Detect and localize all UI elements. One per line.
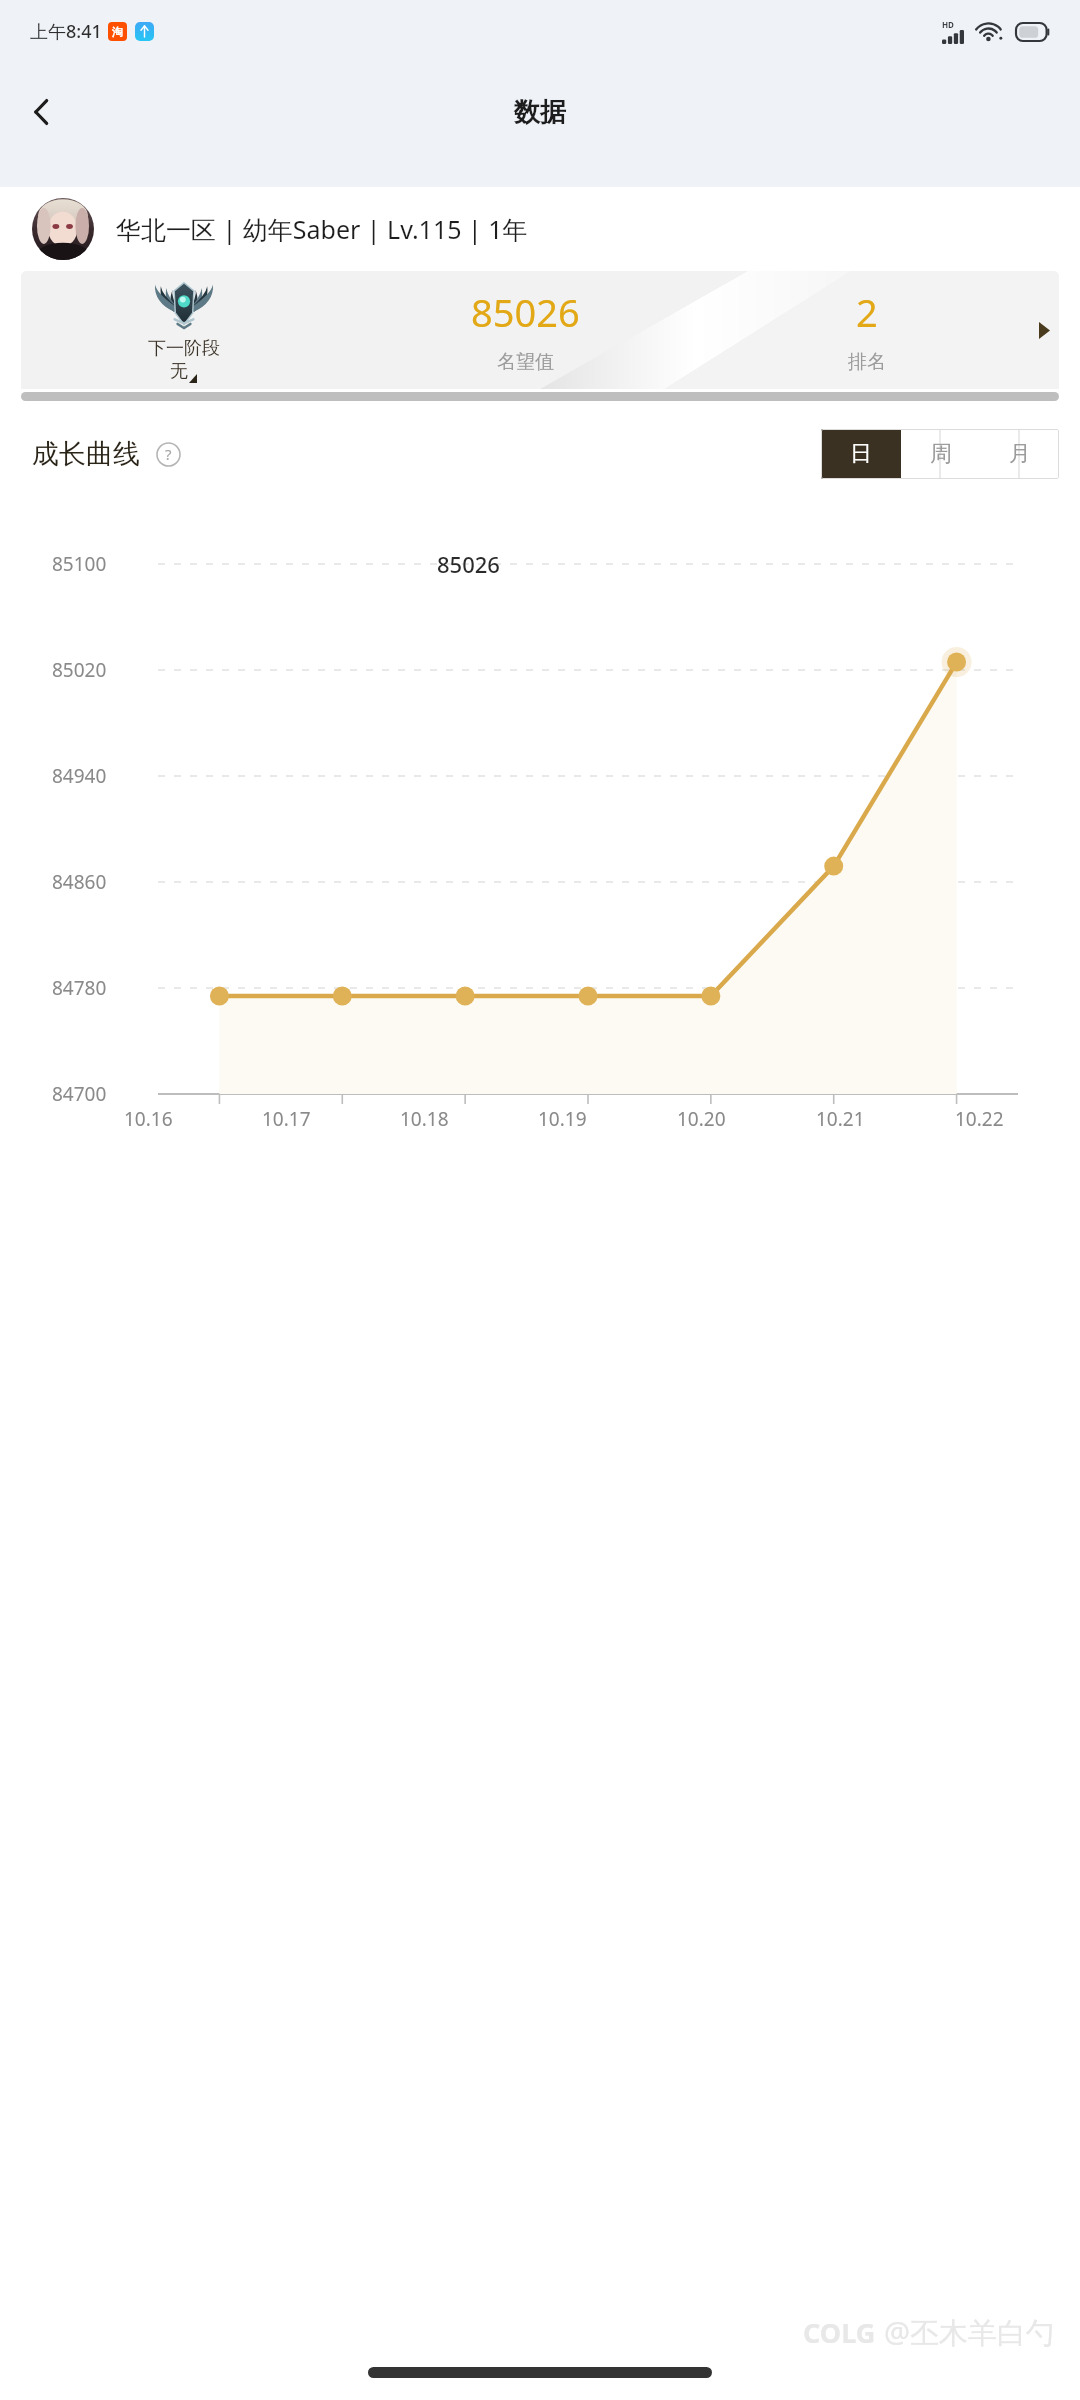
button[interactable]: 周 [901, 429, 980, 479]
staticText: 淘 [112, 25, 123, 39]
staticText: 日 [850, 440, 872, 468]
staticText: 10.17 [262, 1106, 311, 1132]
button[interactable]: Back [14, 84, 70, 140]
staticText: 85020 [52, 657, 136, 683]
button[interactable]: 下一阶段 [21, 271, 1059, 389]
staticText: 无 [170, 360, 188, 383]
staticText: ? [165, 444, 172, 464]
button[interactable]: 月 [980, 429, 1059, 479]
staticText: HD [942, 19, 954, 30]
staticText: 84780 [52, 975, 136, 1001]
button[interactable]: 日 [821, 429, 901, 479]
staticText: 月 [1009, 440, 1031, 468]
staticText: 84940 [52, 763, 136, 789]
staticText: 数据 [514, 96, 566, 129]
staticText: 10.22 [955, 1106, 1004, 1132]
button[interactable]: More [1029, 271, 1059, 389]
staticText: 84860 [52, 869, 136, 895]
staticText: 上午8:41 [30, 19, 102, 44]
staticText: COLG [803, 2314, 876, 2351]
staticText: 10.18 [400, 1106, 449, 1132]
staticText: 名望值 [497, 350, 554, 374]
staticText: 下一阶段 [148, 337, 220, 360]
staticText: 华北一区 | 幼年Saber | Lv.115 | 1年 [116, 212, 528, 246]
staticText: 排名 [848, 350, 886, 374]
staticText: 周 [930, 440, 952, 468]
staticText: 10.20 [677, 1106, 726, 1132]
button[interactable]: 华北一区 | 幼年Saber | Lv.115 | 1年 [0, 187, 1080, 271]
button[interactable]: Help [152, 438, 184, 470]
staticText: 10.19 [538, 1106, 587, 1132]
staticText: 84700 [52, 1081, 136, 1107]
staticText: 85100 [52, 551, 136, 577]
staticText: 2 [856, 286, 878, 338]
staticText: @丕木羊白勺 [884, 2312, 1056, 2352]
staticText: 10.16 [124, 1106, 173, 1132]
staticText: 85026 [437, 549, 500, 579]
staticText: 85026 [471, 286, 580, 338]
staticText: 成长曲线 [32, 437, 140, 471]
staticText: 10.21 [816, 1106, 865, 1132]
